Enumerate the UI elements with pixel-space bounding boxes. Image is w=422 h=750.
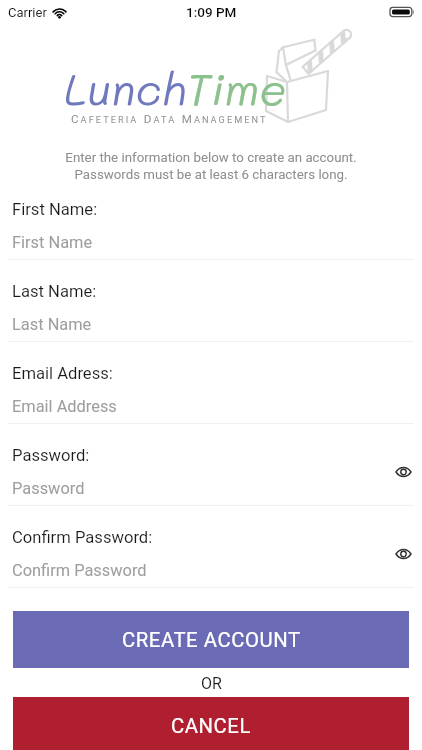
staticText: OR <box>201 674 222 693</box>
staticText: Enter the information below to create an… <box>0 150 422 166</box>
staticText: Confirm Password: <box>12 528 153 547</box>
staticText: First Name: <box>12 200 98 219</box>
staticText: CANCEL <box>171 714 251 738</box>
button[interactable]: Confirm Password: <box>0 521 422 587</box>
staticText: First Name <box>12 233 93 252</box>
button[interactable]: Password: <box>0 439 422 505</box>
staticText: Password: <box>12 446 90 465</box>
staticText: 1:09 PM <box>186 4 237 20</box>
button[interactable]: Email Adress: <box>0 357 422 423</box>
button[interactable]: CREATE ACCOUNT <box>13 611 409 668</box>
staticText: Last Name: <box>12 282 97 301</box>
staticText: Password <box>12 479 85 498</box>
staticText: Email Address <box>12 397 117 416</box>
button[interactable]: Show password <box>391 542 415 566</box>
button[interactable]: Last Name: <box>0 275 422 341</box>
staticText: LunchTime <box>64 60 287 117</box>
button[interactable]: First Name: <box>0 193 422 259</box>
staticText: Last Name <box>12 315 92 334</box>
staticText: CREATE ACCOUNT <box>122 628 301 652</box>
staticText: Carrier <box>8 5 47 20</box>
button[interactable]: CANCEL <box>13 697 409 750</box>
staticText: Email Adress: <box>12 364 113 383</box>
staticText: Confirm Password <box>12 561 147 580</box>
staticText: CAFETERIA DATA MANAGEMENT <box>71 110 268 126</box>
button[interactable]: Show password <box>391 460 415 484</box>
staticText: Passwords must be at least 6 characters … <box>0 167 422 183</box>
